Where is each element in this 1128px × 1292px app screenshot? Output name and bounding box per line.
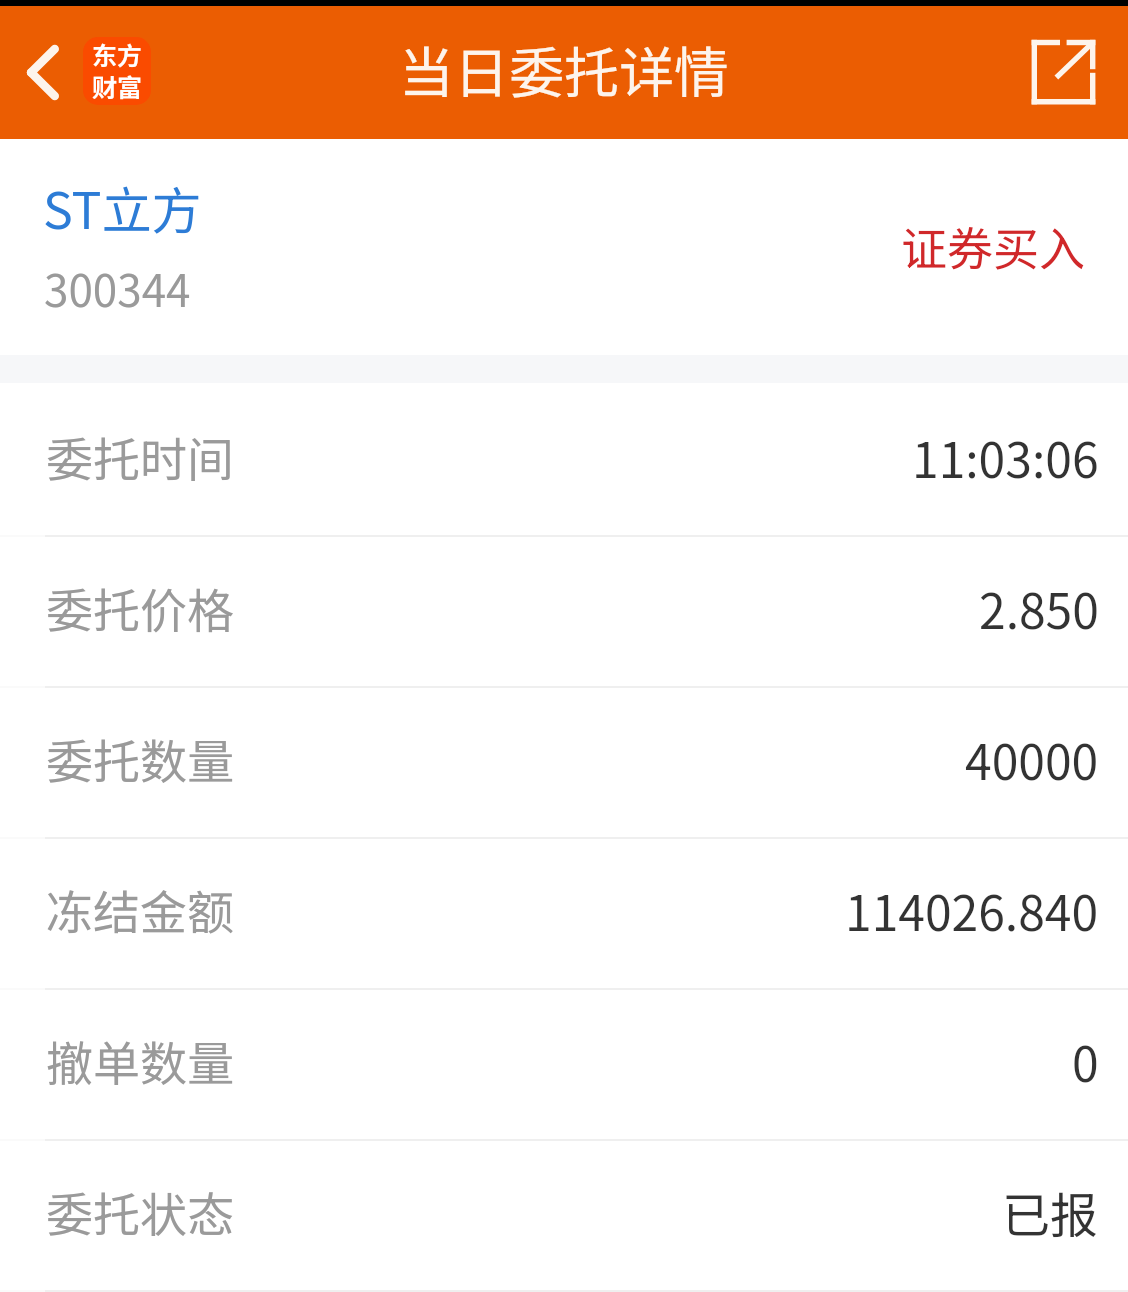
staticText: 40000 <box>965 724 1099 794</box>
button[interactable]: 委托状态 <box>0 1141 1128 1290</box>
button[interactable]: 冻结金额 <box>0 839 1128 988</box>
staticText: 114026.840 <box>845 875 1099 945</box>
staticText: 冻结金额 <box>46 875 234 943</box>
staticText: ST立方 <box>43 171 202 243</box>
button[interactable]: 撤单数量 <box>0 990 1128 1139</box>
staticText: 财富 <box>92 68 143 100</box>
staticText: 11:03:06 <box>912 422 1099 492</box>
button[interactable]: ST立方 <box>0 139 1128 355</box>
staticText: 撤单数量 <box>46 1026 234 1094</box>
staticText: 委托价格 <box>46 573 234 641</box>
button[interactable]: 委托时间 <box>0 386 1128 535</box>
staticText: 2.850 <box>979 573 1099 643</box>
staticText: 证券买入 <box>901 213 1085 280</box>
staticText: 已报 <box>1002 1177 1099 1247</box>
button[interactable]: 委托价格 <box>0 537 1128 686</box>
button[interactable]: 委托数量 <box>0 688 1128 837</box>
staticText: 0 <box>1072 1026 1099 1096</box>
button[interactable]: Share <box>998 6 1128 139</box>
staticText: 当日委托详情 <box>399 29 730 109</box>
staticText: 300344 <box>44 256 191 320</box>
staticText: 委托数量 <box>46 724 234 792</box>
staticText: 东方 <box>92 37 143 72</box>
staticText: 委托状态 <box>46 1177 234 1245</box>
button[interactable]: Back <box>0 6 84 139</box>
staticText: 委托时间 <box>46 422 234 490</box>
